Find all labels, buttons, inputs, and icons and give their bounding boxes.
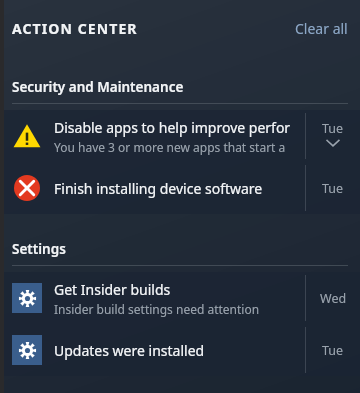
staticText: Tue — [322, 120, 344, 137]
button[interactable]: Settings — [0, 324, 360, 376]
staticText: You have 3 or more new apps that start a — [54, 139, 286, 155]
staticText: Wed — [320, 290, 347, 307]
staticText: Settings — [12, 240, 66, 258]
staticText: Finish installing device software — [54, 179, 263, 198]
other: Error — [14, 175, 40, 201]
staticText: Clear all — [295, 19, 348, 38]
staticText: Get Insider builds — [54, 280, 171, 299]
staticText: Tue — [322, 342, 344, 359]
other: Settings — [12, 335, 42, 365]
staticText: Updates were installed — [54, 341, 205, 360]
staticText: Security and Maintenance — [12, 78, 184, 96]
staticText: ACTION CENTER — [12, 19, 138, 38]
staticText: Insider build settings need attention — [54, 301, 260, 317]
button[interactable]: Settings — [0, 272, 360, 324]
button[interactable]: Expand notification — [322, 132, 344, 154]
button[interactable]: Clear all — [283, 13, 360, 44]
button[interactable]: Warning — [0, 110, 360, 162]
staticText: Disable apps to help improve perfor — [54, 118, 291, 137]
button[interactable]: Error — [0, 162, 360, 214]
other: Settings — [12, 283, 42, 313]
staticText: Tue — [322, 180, 344, 197]
other: Warning — [13, 122, 41, 150]
